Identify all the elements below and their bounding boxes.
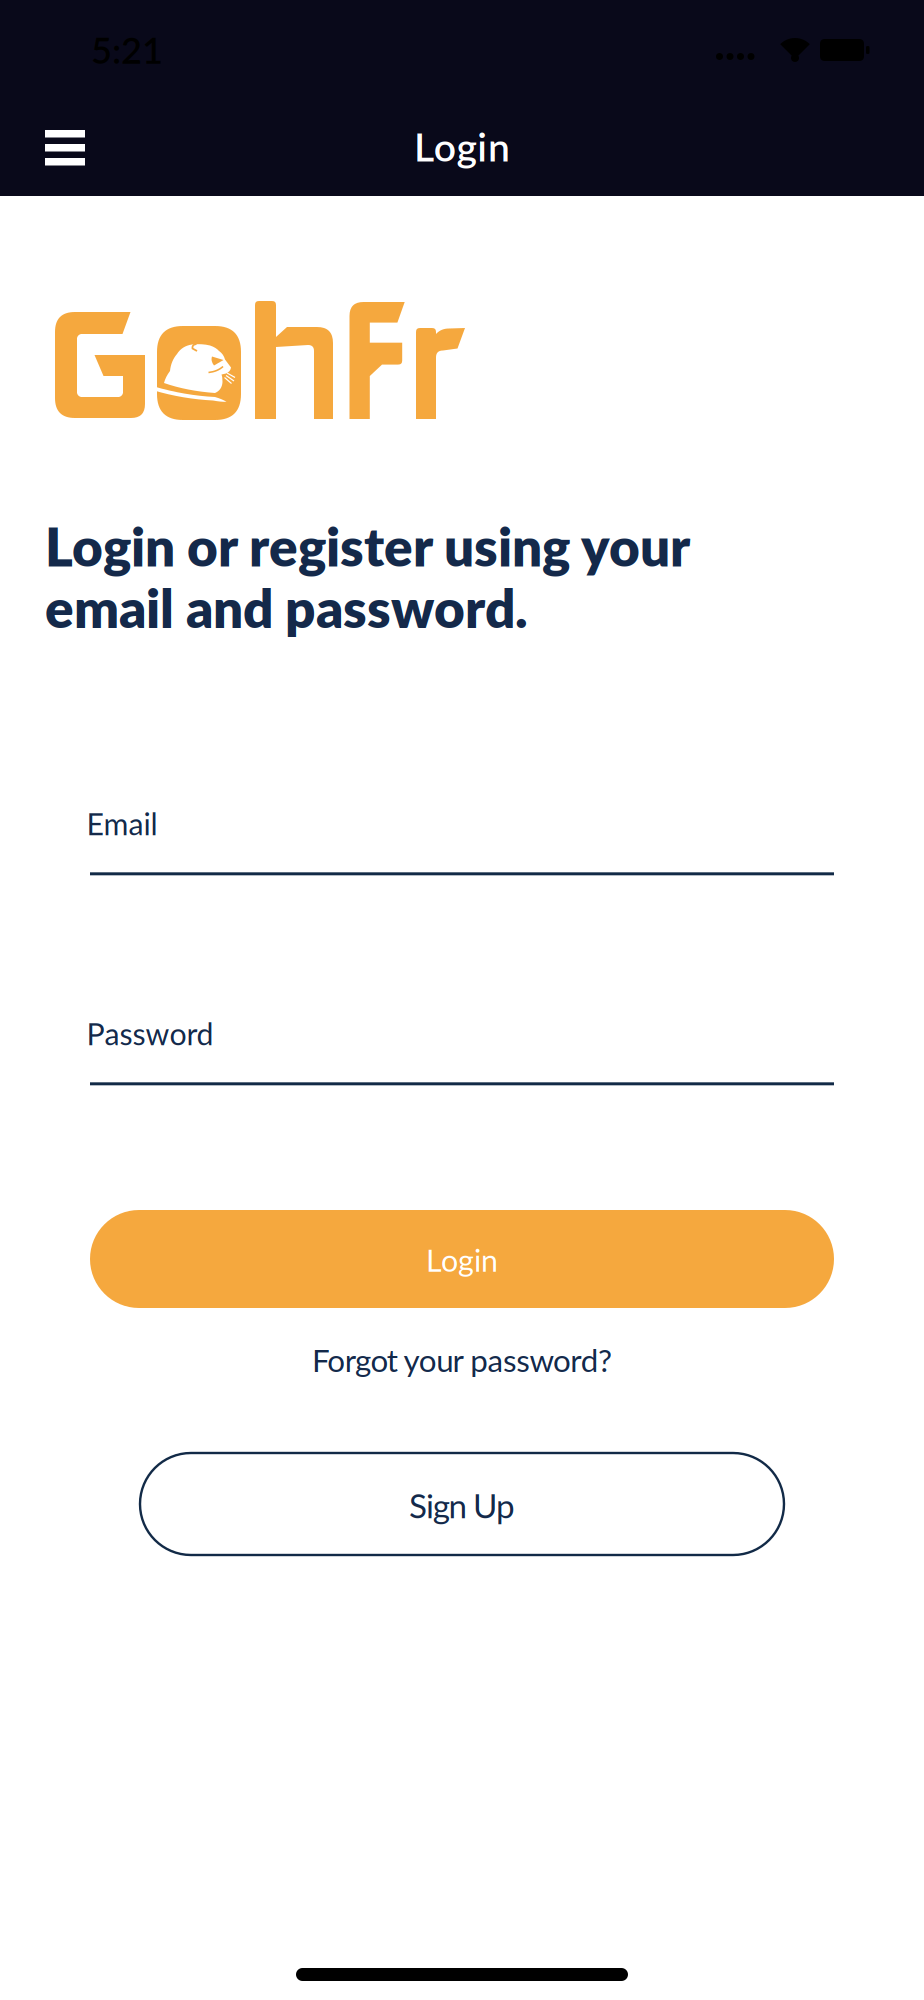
button[interactable]: Login	[90, 1210, 834, 1308]
button[interactable]: Password	[0, 0, 834, 1085]
staticText: Email	[86, 805, 157, 842]
button[interactable]: Email	[0, 0, 834, 875]
staticText: Forgot your password?	[312, 1341, 612, 1379]
button[interactable]: Menu	[0, 0, 85, 165]
button[interactable]: Forgot your password?	[312, 1341, 612, 1379]
staticText: Login	[414, 123, 510, 170]
staticText: Sign Up	[409, 1486, 515, 1525]
staticText: email and password.	[45, 575, 528, 639]
button[interactable]: Sign Up	[140, 1453, 784, 1555]
staticText: Login or register using your	[45, 514, 690, 578]
staticText: 5:21	[91, 28, 163, 71]
staticText: Password	[86, 1015, 213, 1052]
staticText: Login	[426, 1242, 498, 1278]
